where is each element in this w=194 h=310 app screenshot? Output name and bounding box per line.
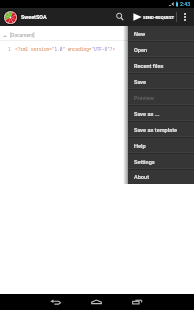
button[interactable]: New bbox=[128, 26, 194, 42]
staticText: <?xml version="1.0" encoding="UTF-8"?> bbox=[15, 46, 116, 52]
staticText: [Document] bbox=[10, 33, 35, 39]
staticText: Settings bbox=[134, 159, 155, 166]
button[interactable]: Preview bbox=[128, 90, 194, 106]
button[interactable]: Help bbox=[128, 138, 194, 154]
button[interactable]: Recent files bbox=[128, 58, 194, 74]
staticText: New bbox=[134, 31, 146, 38]
staticText: Save bbox=[134, 79, 147, 86]
button[interactable]: Save as ... bbox=[128, 106, 194, 122]
staticText: Open bbox=[134, 47, 148, 54]
button[interactable]: Back bbox=[35, 294, 76, 310]
staticText: 2:43 bbox=[180, 1, 191, 7]
button[interactable]: About bbox=[128, 170, 194, 184]
button[interactable]: Search bbox=[113, 8, 127, 26]
button[interactable]: Recent apps bbox=[117, 294, 158, 310]
button[interactable]: SweetSOA bbox=[0, 8, 50, 26]
staticText: Recent files bbox=[134, 63, 164, 70]
button[interactable]: Open bbox=[128, 42, 194, 58]
button[interactable]: Save bbox=[128, 74, 194, 90]
staticText: Save as template bbox=[134, 127, 178, 134]
button[interactable]: More options bbox=[177, 8, 194, 26]
staticText: Save as ... bbox=[134, 111, 160, 118]
staticText: Help bbox=[134, 143, 146, 150]
button[interactable]: Settings bbox=[128, 154, 194, 170]
staticText: 1 bbox=[8, 46, 11, 52]
button[interactable]: Save as template bbox=[128, 122, 194, 138]
staticText: About bbox=[134, 174, 150, 181]
button[interactable]: SEND-REQUEST bbox=[127, 8, 176, 26]
staticText: SEND-REQUEST bbox=[143, 15, 175, 20]
button[interactable]: Home bbox=[76, 294, 117, 310]
staticText: Preview bbox=[134, 95, 154, 102]
staticText: SweetSOA bbox=[21, 14, 47, 20]
button[interactable]: [Document] bbox=[3, 33, 35, 39]
